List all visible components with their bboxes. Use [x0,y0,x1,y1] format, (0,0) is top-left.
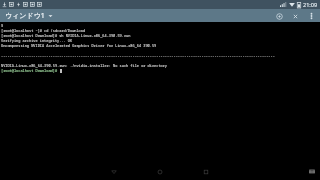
button[interactable]: Close window [289,10,301,22]
button[interactable]: Back [103,163,125,180]
staticText: $ [1,23,4,28]
staticText: [root@localhost ~]# cd /sdcard/Download [1,28,86,33]
button[interactable]: $ [0,22,320,163]
staticText: Uncompressing NVIDIA Accelerated Graphic… [1,43,157,48]
button[interactable]: New window [273,10,285,22]
button[interactable]: ウィンドウ1 [0,9,59,22]
staticText: [root@localhost Download]# [1,68,60,73]
staticText: [root@localhost Download]# sh NVIDIA-Lin… [1,33,131,38]
staticText: 21:09 [303,1,318,8]
staticText: ----------------------------------------… [1,53,275,58]
staticText: ウィンドウ1 [5,11,45,21]
staticText: NVIDIA-Linux-x86_64-390.59.run: ./nvidia… [1,63,168,68]
button[interactable]: Home [149,163,171,180]
button[interactable]: Recent apps [195,163,217,180]
staticText: Verifying archive integrity... OK [1,38,73,43]
button[interactable]: Keyboard [309,169,315,174]
button[interactable]: More options [305,10,317,22]
